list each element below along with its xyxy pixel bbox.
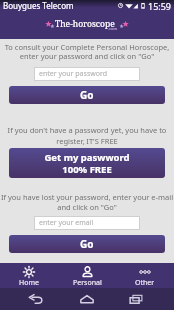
staticText: Bouygues Telecom (3, 0, 74, 11)
staticText: If you have lost your password, enter yo… (0, 192, 174, 202)
staticText: register, IT'S FREE (0, 136, 174, 146)
staticText: To consult your Complete Personal Horosc… (0, 42, 174, 52)
button[interactable]: Home (67, 288, 107, 310)
staticText: Get my paswword 100% FREE (44, 151, 130, 175)
button[interactable]: Personal (58, 263, 116, 288)
button[interactable]: Go (9, 235, 165, 253)
staticText: .com (108, 26, 118, 31)
button[interactable]: enter your password (35, 68, 139, 80)
staticText: Home (19, 278, 39, 288)
button[interactable]: Get my paswword 100% FREE (9, 148, 165, 178)
staticText: Go (80, 88, 94, 102)
button[interactable]: Home (0, 263, 58, 288)
button[interactable]: Back (16, 288, 56, 310)
staticText: Go (80, 237, 94, 251)
staticText: If you don't have a password yet, you ha… (0, 125, 174, 135)
staticText: Personal (73, 278, 102, 288)
button[interactable]: Go (9, 86, 165, 104)
button[interactable]: enter your email (35, 217, 139, 229)
staticText: and click on "Go" (0, 202, 174, 212)
button[interactable]: Other (116, 263, 174, 288)
staticText: 15:59 (148, 0, 172, 11)
staticText: enter your email (39, 218, 94, 228)
staticText: The-horoscope (55, 18, 115, 30)
staticText: enter your password and click on "Go" (0, 51, 174, 61)
staticText: Other (135, 278, 155, 288)
staticText: enter your password (39, 69, 108, 79)
button[interactable]: Recent apps (116, 288, 156, 310)
